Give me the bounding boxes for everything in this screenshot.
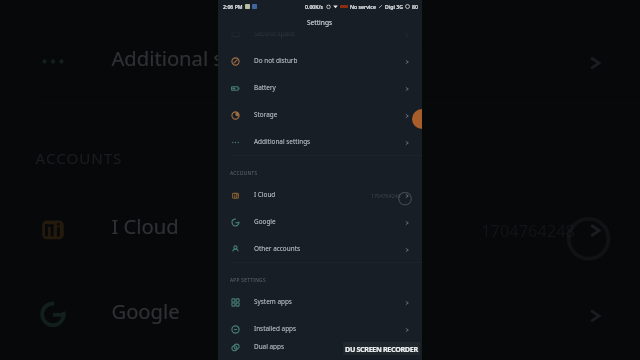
staticText: 2:06 PM: [223, 3, 243, 10]
button[interactable]: Additional settings: [0, 19, 640, 104]
button[interactable]: Recorder: [412, 109, 422, 129]
button[interactable]: Other accounts: [218, 236, 422, 263]
staticText: Additional settings: [111, 44, 291, 72]
staticText: 1704764248: [481, 218, 576, 240]
staticText: Do not disturb: [254, 56, 298, 65]
staticText: Other accounts: [254, 244, 301, 253]
staticText: Battery: [254, 83, 276, 92]
staticText: Google: [254, 217, 276, 226]
button[interactable]: Storage: [218, 102, 422, 129]
staticText: System apps: [254, 297, 292, 306]
button[interactable]: Dual apps: [218, 343, 422, 351]
staticText: 1704764248: [371, 192, 401, 199]
staticText: 80: [412, 3, 418, 10]
staticText: I Cloud: [254, 190, 276, 199]
button[interactable]: I Cloud: [0, 186, 640, 272]
button[interactable]: Google: [0, 272, 640, 357]
button[interactable]: Installed apps: [218, 316, 422, 343]
staticText: Google: [111, 297, 181, 325]
staticText: ACCOUNTS: [36, 148, 124, 170]
staticText: Second space: [254, 30, 295, 38]
button[interactable]: Do not disturb: [218, 48, 422, 75]
staticText: APP SETTINGS: [230, 277, 266, 284]
staticText: I Cloud: [111, 212, 181, 240]
staticText: Installed apps: [254, 324, 297, 333]
staticText: 0.00K/s: [305, 3, 324, 10]
button[interactable]: System apps: [218, 289, 422, 316]
staticText: Settings: [307, 18, 333, 27]
button[interactable]: Storage: [0, 0, 640, 19]
button[interactable]: Google: [218, 209, 422, 236]
staticText: No service: [350, 3, 376, 10]
staticText: ACCOUNTS: [230, 170, 258, 177]
button[interactable]: Other accounts: [0, 357, 640, 360]
staticText: Dual apps: [254, 342, 285, 350]
staticText: Storage: [254, 110, 278, 119]
staticText: Additional settings: [254, 137, 311, 146]
staticText: DU SCREEN RECORDER: [345, 344, 418, 354]
button[interactable]: Battery: [218, 75, 422, 102]
button[interactable]: Additional settings: [218, 129, 422, 156]
button[interactable]: I Cloud: [218, 182, 422, 209]
staticText: Digi 3G: [385, 3, 403, 10]
